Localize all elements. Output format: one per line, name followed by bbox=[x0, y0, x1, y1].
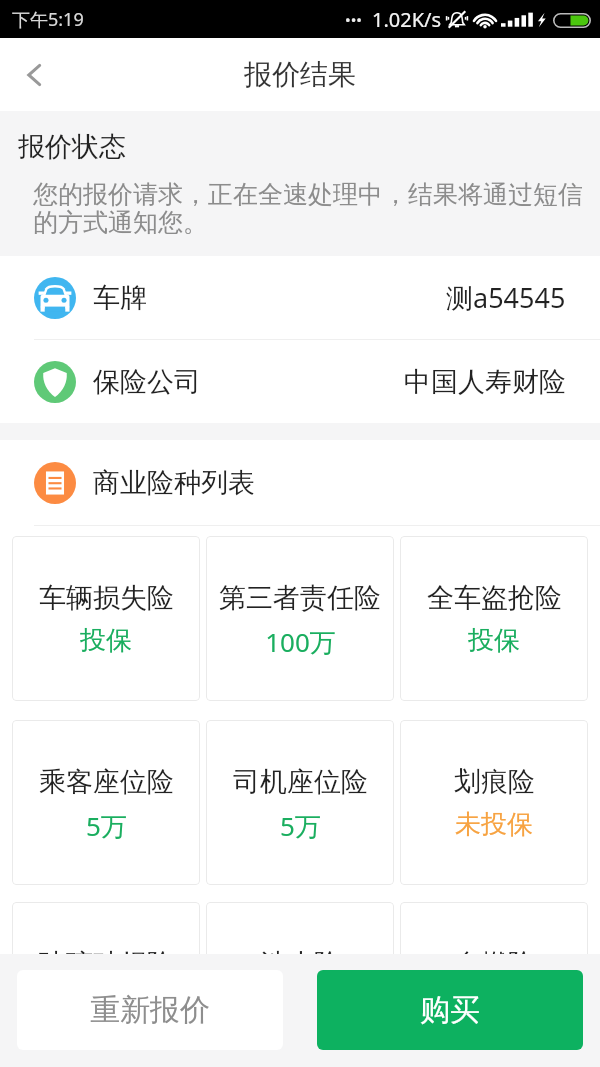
button[interactable]: 重新报价 bbox=[17, 970, 283, 1050]
button[interactable]: 自燃险 bbox=[400, 902, 588, 954]
staticText: 重新报价 bbox=[90, 991, 210, 1029]
staticText: 100万 bbox=[265, 624, 336, 660]
staticText: 投保 bbox=[80, 624, 132, 657]
staticText: 车牌 bbox=[93, 281, 147, 315]
staticText: 车辆损失险 bbox=[39, 581, 174, 615]
button[interactable]: 第三者责任险 bbox=[206, 536, 394, 701]
button[interactable]: Back bbox=[0, 38, 70, 111]
staticText: 乘客座位险 bbox=[39, 765, 174, 799]
staticText: 全车盗抢险 bbox=[427, 581, 562, 615]
button[interactable]: 玻璃破损险 bbox=[12, 902, 200, 954]
button[interactable]: 车牌 bbox=[0, 256, 600, 339]
staticText: 保险公司 bbox=[93, 365, 201, 399]
button[interactable]: 购买 bbox=[317, 970, 583, 1050]
staticText: 5万 bbox=[86, 808, 127, 844]
staticText: 划痕险 bbox=[454, 765, 535, 799]
button[interactable]: 车辆损失险 bbox=[12, 536, 200, 701]
button[interactable]: 全车盗抢险 bbox=[400, 536, 588, 701]
staticText: 您的报价请求，正在全速处理中，结果将通过短信 的方式通知您。 bbox=[33, 179, 583, 238]
staticText: 中国人寿财险 bbox=[404, 365, 566, 399]
staticText: 第三者责任险 bbox=[219, 581, 381, 615]
staticText: 商业险种列表 bbox=[93, 466, 255, 500]
button[interactable]: 保险公司 bbox=[0, 340, 600, 423]
button[interactable]: 涉水险 bbox=[206, 902, 394, 954]
staticText: ••• bbox=[345, 10, 362, 30]
button[interactable]: 乘客座位险 bbox=[12, 720, 200, 885]
staticText: 涉水险 bbox=[260, 947, 341, 954]
staticText: 1.02K/s bbox=[372, 6, 442, 33]
staticText: 5万 bbox=[280, 808, 321, 844]
staticText: 未投保 bbox=[455, 808, 533, 841]
staticText: 玻璃破损险 bbox=[39, 947, 174, 954]
staticText: 测a54545 bbox=[446, 279, 566, 316]
staticText: 投保 bbox=[468, 624, 520, 657]
button[interactable]: 司机座位险 bbox=[206, 720, 394, 885]
button[interactable]: 划痕险 bbox=[400, 720, 588, 885]
staticText: 下午5:19 bbox=[12, 7, 84, 32]
staticText: 司机座位险 bbox=[233, 765, 368, 799]
staticText: 自燃险 bbox=[454, 947, 535, 954]
staticText: 购买 bbox=[420, 991, 480, 1029]
staticText: 报价状态 bbox=[18, 130, 126, 164]
staticText: 报价结果 bbox=[244, 57, 356, 92]
